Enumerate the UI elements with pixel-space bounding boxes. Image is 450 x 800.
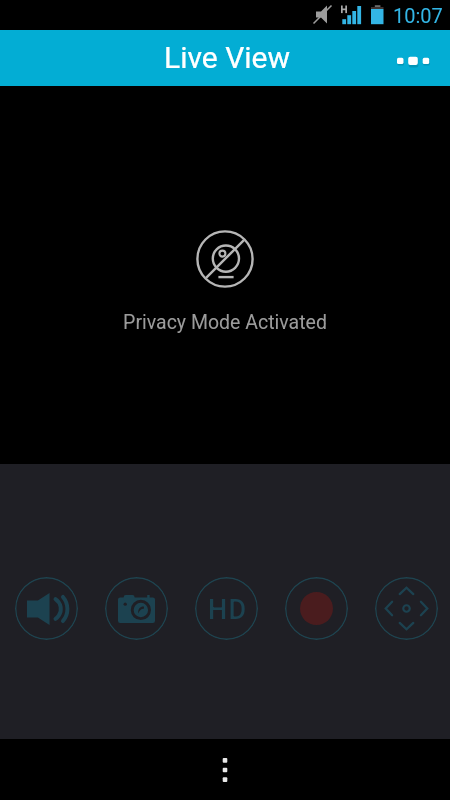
staticText: HD	[208, 594, 248, 626]
staticText: Privacy Mode Activated	[123, 311, 327, 334]
button[interactable]: Snapshot	[105, 577, 168, 640]
button[interactable]: More options	[385, 30, 441, 86]
staticText: 10:07	[393, 4, 443, 27]
button[interactable]: Speaker	[15, 577, 78, 640]
button[interactable]: HD quality	[195, 577, 258, 640]
button[interactable]: Menu	[201, 746, 249, 794]
button[interactable]: Record	[285, 577, 348, 640]
button[interactable]: Pan tilt	[375, 577, 438, 640]
staticText: Live View	[164, 40, 290, 75]
